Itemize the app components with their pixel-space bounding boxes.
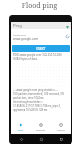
staticText: www.google.com [13, 37, 39, 41]
staticText: --- www.google.com ping statistics --- [13, 88, 58, 92]
button[interactable]: History [51, 119, 71, 134]
staticText: 56(84) bytes of data. [13, 57, 38, 61]
staticText: Settings [36, 128, 46, 131]
staticText: PING www.google.com (142.250.74.206) [13, 53, 62, 57]
staticText: rtt min/avg/max/mdev = [13, 100, 43, 104]
staticText: ipg/ewma 10.528/35.128 ms [13, 108, 48, 112]
button[interactable]: Back [19, 137, 23, 141]
staticText: Flood ping [0, 1, 81, 11]
button[interactable]: Settings [31, 119, 51, 134]
staticText: Ping [18, 128, 24, 131]
button[interactable]: START [12, 45, 70, 52]
button[interactable]: Recents [59, 137, 63, 141]
staticText: START [36, 47, 46, 51]
button[interactable]: Dropdown [65, 25, 69, 29]
button[interactable]: Ping [11, 119, 31, 134]
staticText: History [57, 128, 66, 131]
staticText: 31.858/36.217/57.789/3.738 ms, pipe 2, [13, 104, 61, 108]
button[interactable]: Refresh [64, 33, 70, 39]
staticText: Ping [13, 23, 22, 29]
staticText: packet loss, time 1042ms [13, 96, 44, 100]
button[interactable]: Home [39, 137, 43, 141]
staticText: 100 packets transmitted, 100 received, 0… [13, 92, 65, 96]
staticText: Target host [13, 33, 26, 36]
